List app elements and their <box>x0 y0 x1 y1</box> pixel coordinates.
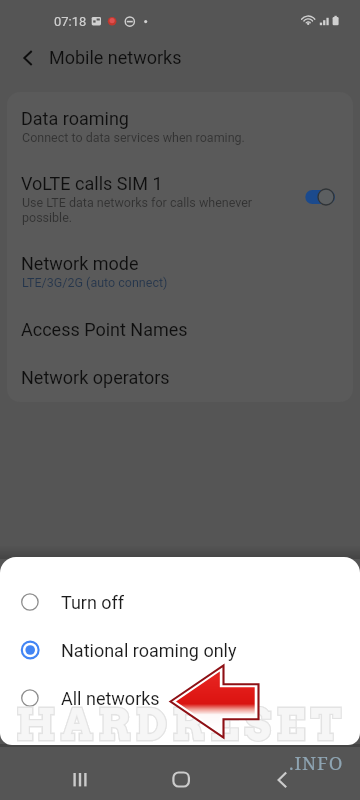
button[interactable]: All networks <box>0 674 360 722</box>
button[interactable]: Home <box>151 762 211 800</box>
button[interactable]: Navigate up <box>12 44 42 72</box>
staticText: National roaming only <box>61 640 237 661</box>
button[interactable]: National roaming only <box>0 626 360 674</box>
staticText: LTE/3G/2G (auto connect) <box>22 275 168 290</box>
button[interactable] <box>7 298 353 350</box>
button[interactable]: Recent apps <box>50 762 110 800</box>
staticText: Turn off <box>61 592 125 613</box>
staticText: Network operators <box>21 367 170 388</box>
staticText: VoLTE calls SIM 1 <box>21 173 163 194</box>
staticText: Data roaming <box>21 108 129 129</box>
button[interactable] <box>7 350 353 402</box>
button[interactable] <box>7 236 353 298</box>
button[interactable]: Back <box>252 762 312 800</box>
staticText: HARDRESET <box>16 699 347 751</box>
button[interactable] <box>7 92 353 154</box>
button[interactable] <box>7 154 353 236</box>
staticText: All networks <box>61 688 160 709</box>
staticText: .INFO <box>289 750 344 775</box>
button[interactable]: Turn off <box>0 578 360 626</box>
staticText: possible. <box>22 210 73 225</box>
staticText: Use LTE data networks for calls whenever <box>22 195 253 210</box>
staticText: Mobile networks <box>49 47 182 68</box>
button[interactable]: VoLTE calls SIM 1 toggle <box>302 185 342 209</box>
staticText: HARDRESET <box>16 699 347 751</box>
staticText: Network mode <box>21 253 139 274</box>
staticText: Access Point Names <box>21 319 188 340</box>
staticText: Connect to data services when roaming. <box>22 130 245 145</box>
staticText: 07:18 <box>54 14 87 29</box>
